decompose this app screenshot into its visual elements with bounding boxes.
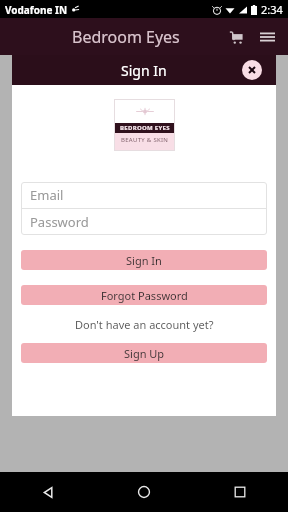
- staticText: 2:34: [261, 2, 283, 17]
- staticText: Sign In: [121, 61, 167, 80]
- button[interactable]: Close: [242, 60, 262, 80]
- button[interactable]: Home: [96, 472, 192, 512]
- staticText: BEAUTY & SKIN: [121, 136, 169, 144]
- button[interactable]: Recents: [192, 472, 288, 512]
- button[interactable]: Menu: [254, 24, 280, 50]
- staticText: Vodafone IN: [5, 3, 68, 17]
- button[interactable]: Sign Up: [21, 343, 267, 363]
- button[interactable]: Password: [21, 209, 267, 235]
- staticText: Password: [30, 213, 89, 231]
- staticText: Bedroom Eyes: [72, 26, 180, 48]
- staticText: Sign Up: [124, 346, 165, 361]
- button[interactable]: Email: [21, 182, 267, 208]
- button[interactable]: Cart: [224, 24, 250, 50]
- button[interactable]: Back: [0, 472, 96, 512]
- staticText: Don't have an account yet?: [75, 317, 214, 332]
- staticText: Sign In: [126, 253, 162, 268]
- staticText: Email: [30, 186, 64, 204]
- button[interactable]: Sign In: [21, 250, 267, 270]
- button[interactable]: Forgot Password: [21, 285, 267, 305]
- staticText: BEDROOM EYES: [120, 124, 170, 132]
- staticText: Forgot Password: [101, 288, 188, 303]
